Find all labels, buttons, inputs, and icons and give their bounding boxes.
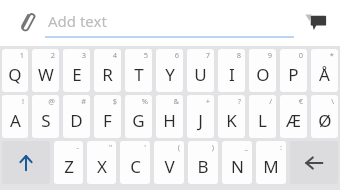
button[interactable]: @ — [32, 95, 59, 138]
staticText: 3 — [81, 50, 86, 60]
staticText: X — [97, 155, 107, 178]
staticText: B — [197, 155, 209, 178]
staticText: R — [102, 63, 113, 86]
button[interactable]: \ — [311, 95, 338, 138]
button[interactable]: " — [87, 141, 116, 184]
staticText: Z — [64, 155, 74, 178]
staticText: F — [103, 109, 112, 132]
staticText: + — [205, 96, 210, 106]
button[interactable]: 9 — [249, 49, 276, 92]
button[interactable]: 1 — [2, 49, 28, 92]
staticText: S — [41, 109, 51, 132]
staticText: 0 — [298, 50, 303, 60]
button[interactable]: : — [256, 141, 286, 184]
button[interactable]: & — [156, 95, 183, 138]
button[interactable]: 8 — [218, 49, 245, 92]
staticText: # — [81, 96, 86, 106]
staticText: ! — [21, 96, 24, 106]
staticText: Add text — [48, 11, 107, 31]
staticText: % — [141, 96, 148, 106]
button[interactable]: 0 — [280, 49, 307, 92]
staticText: Å — [319, 63, 330, 86]
staticText: \ — [331, 96, 334, 106]
staticText: Ø — [318, 109, 332, 132]
staticText: ( — [177, 142, 180, 152]
staticText: _ — [244, 142, 248, 152]
staticText: M — [263, 155, 279, 178]
staticText: $ — [112, 96, 117, 106]
button[interactable]: 2 — [32, 49, 59, 92]
staticText: 9 — [267, 50, 272, 60]
staticText: N — [231, 155, 244, 178]
button[interactable]: / — [249, 95, 276, 138]
button[interactable]: Backspace — [290, 141, 338, 184]
button[interactable]: - — [54, 141, 83, 184]
button[interactable]: € — [280, 95, 307, 138]
staticText: Q — [8, 63, 22, 86]
staticText: 7 — [205, 50, 210, 60]
staticText: E — [72, 63, 82, 86]
button[interactable]: 7 — [187, 49, 214, 92]
button[interactable]: Add text — [45, 6, 294, 40]
staticText: V — [164, 155, 175, 178]
staticText: & — [173, 96, 179, 106]
staticText: A — [10, 109, 21, 132]
button[interactable]: 6 — [156, 49, 183, 92]
button[interactable]: % — [125, 95, 152, 138]
staticText: € — [298, 96, 303, 106]
staticText: 6 — [174, 50, 179, 60]
staticText: H — [163, 109, 176, 132]
staticText: W — [38, 63, 54, 86]
staticText: - — [76, 142, 79, 152]
button[interactable]: ! — [2, 95, 28, 138]
button[interactable]: ' — [120, 141, 150, 184]
staticText: 1 — [19, 50, 24, 60]
staticText: G — [132, 109, 145, 132]
staticText: ) — [211, 142, 214, 152]
button[interactable]: $ — [94, 95, 121, 138]
button[interactable]: # — [63, 95, 90, 138]
staticText: C — [130, 155, 141, 178]
staticText: K — [226, 109, 237, 132]
button[interactable]: ( — [154, 141, 184, 184]
staticText: D — [70, 109, 83, 132]
staticText: J — [198, 109, 203, 132]
staticText: T — [134, 63, 144, 86]
button[interactable]: _ — [222, 141, 252, 184]
staticText: * — [329, 50, 334, 60]
staticText: Æ — [286, 109, 301, 132]
button[interactable]: + — [187, 95, 214, 138]
button[interactable]: Shift — [2, 141, 50, 184]
staticText: 4 — [112, 50, 117, 60]
button[interactable]: 4 — [94, 49, 121, 92]
staticText: / — [269, 96, 272, 106]
button[interactable]: ? — [218, 95, 245, 138]
staticText: U — [194, 63, 207, 86]
staticText: " — [108, 142, 112, 152]
staticText: @ — [48, 96, 55, 106]
button[interactable]: * — [311, 49, 338, 92]
button[interactable]: ) — [188, 141, 218, 184]
staticText: I — [229, 63, 235, 86]
button[interactable]: 5 — [125, 49, 152, 92]
button[interactable]: Attach — [14, 9, 42, 37]
staticText: ? — [237, 96, 241, 106]
staticText: O — [256, 63, 270, 86]
staticText: Y — [165, 63, 175, 86]
staticText: 8 — [236, 50, 241, 60]
staticText: 2 — [50, 50, 55, 60]
button[interactable]: 3 — [63, 49, 90, 92]
staticText: 5 — [143, 50, 148, 60]
button[interactable]: Send — [302, 8, 330, 36]
staticText: L — [258, 109, 267, 132]
staticText: ' — [144, 142, 146, 152]
staticText: P — [288, 63, 299, 86]
staticText: : — [279, 142, 282, 152]
